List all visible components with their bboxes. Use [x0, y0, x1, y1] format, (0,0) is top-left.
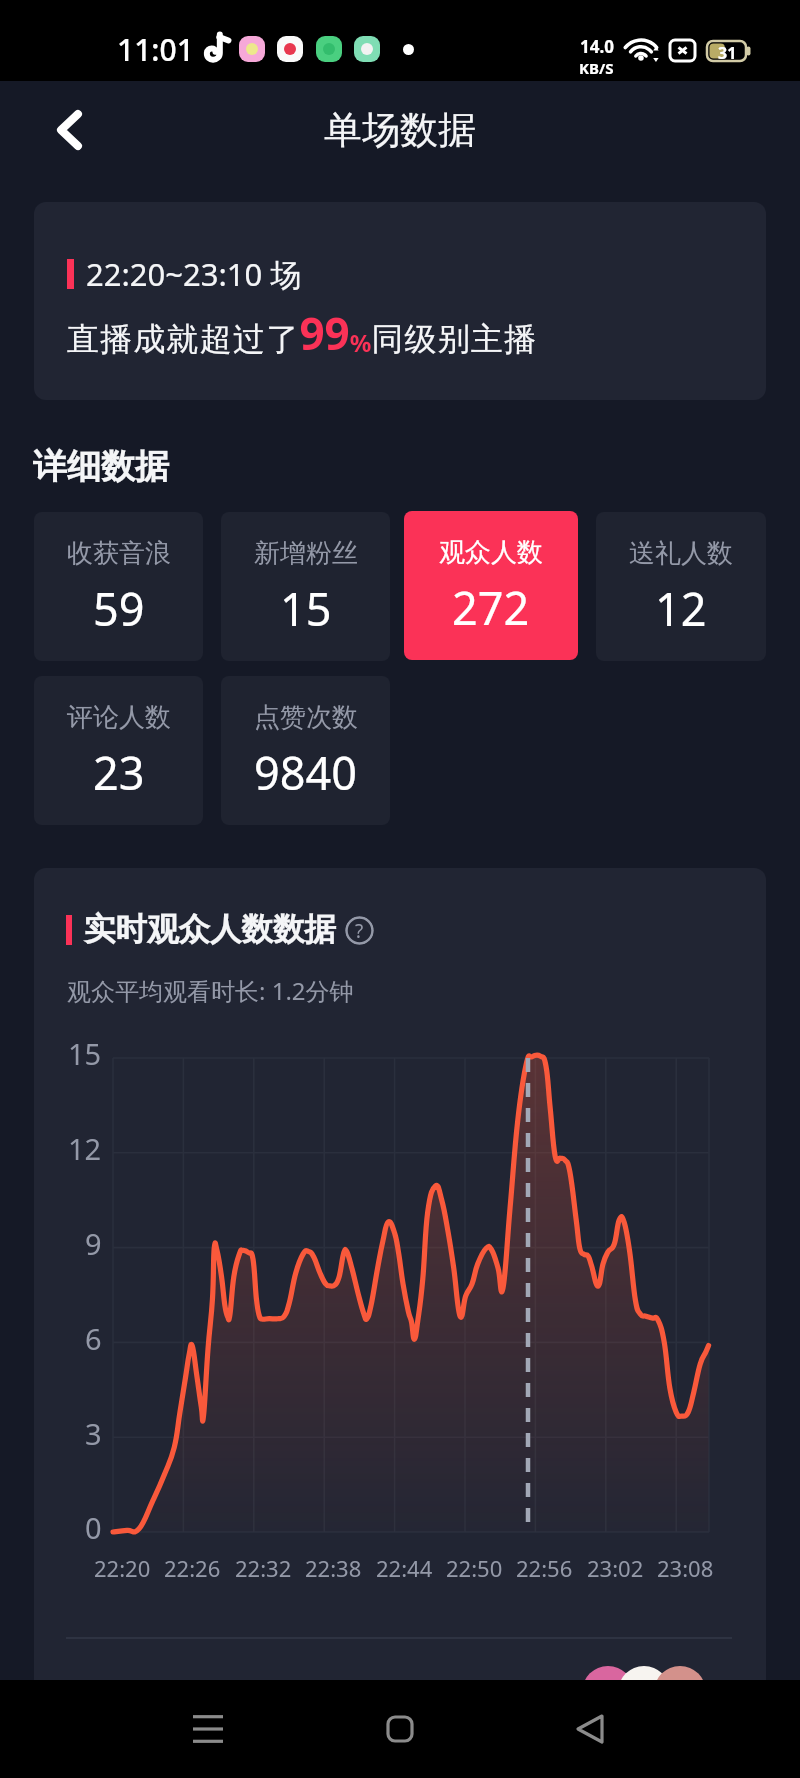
staticText: 23:08	[657, 1553, 714, 1583]
staticText: 单场数据	[324, 106, 476, 154]
staticText: 22:50	[446, 1553, 503, 1583]
staticText: 新增粉丝	[254, 537, 358, 570]
staticText: 6	[85, 1319, 102, 1358]
staticText: 23:02	[587, 1553, 644, 1583]
button[interactable]: Help	[345, 916, 374, 945]
staticText: 评论人数	[67, 701, 171, 734]
staticText: 0	[85, 1508, 102, 1547]
staticText: 14.0	[580, 35, 614, 58]
staticText: 收获音浪	[67, 537, 171, 570]
staticText: 9	[85, 1224, 102, 1263]
staticText: ?	[355, 918, 364, 944]
staticText: 22:38	[305, 1553, 362, 1583]
staticText: 送礼人数	[629, 537, 733, 570]
staticText: 3	[85, 1414, 102, 1453]
staticText: 22:32	[235, 1553, 292, 1583]
staticText: KB/S	[579, 58, 614, 78]
staticText: 12	[655, 578, 707, 639]
button[interactable]: 收获音浪	[34, 512, 203, 661]
staticText: 22:20	[94, 1553, 151, 1583]
staticText: 9840	[254, 742, 357, 803]
staticText: 观众人数	[439, 536, 543, 569]
staticText: 22:20~23:10 场	[86, 253, 302, 295]
staticText: 23	[93, 742, 145, 803]
staticText: 15	[68, 1034, 102, 1073]
staticText: 11:01	[117, 29, 194, 70]
staticText: 22:56	[516, 1553, 573, 1583]
staticText: 15	[280, 578, 332, 639]
button[interactable]: Back	[38, 98, 102, 162]
button[interactable]: Home	[370, 1699, 430, 1759]
button[interactable]: 评论人数	[34, 676, 203, 825]
button[interactable]: 新增粉丝	[221, 512, 390, 661]
staticText: 观众平均观看时长: 1.2分钟	[67, 974, 354, 1007]
button[interactable]: Recent apps	[178, 1699, 238, 1759]
button[interactable]: 送礼人数	[596, 512, 766, 661]
staticText: 直播成就超过了99%同级别主播	[67, 303, 538, 363]
staticText: 22:26	[164, 1553, 221, 1583]
staticText: 12	[68, 1129, 102, 1168]
staticText: 31	[718, 42, 737, 64]
button[interactable]: Back	[560, 1699, 620, 1759]
button[interactable]: 观众人数	[404, 511, 578, 660]
staticText: 实时观众人数数据	[84, 910, 336, 950]
button[interactable]: 点赞次数	[221, 676, 390, 825]
staticText: 点赞次数	[254, 701, 358, 734]
staticText: 22:44	[376, 1553, 433, 1583]
staticText: 详细数据	[33, 445, 169, 488]
staticText: 272	[452, 577, 530, 638]
staticText: 59	[93, 578, 145, 639]
